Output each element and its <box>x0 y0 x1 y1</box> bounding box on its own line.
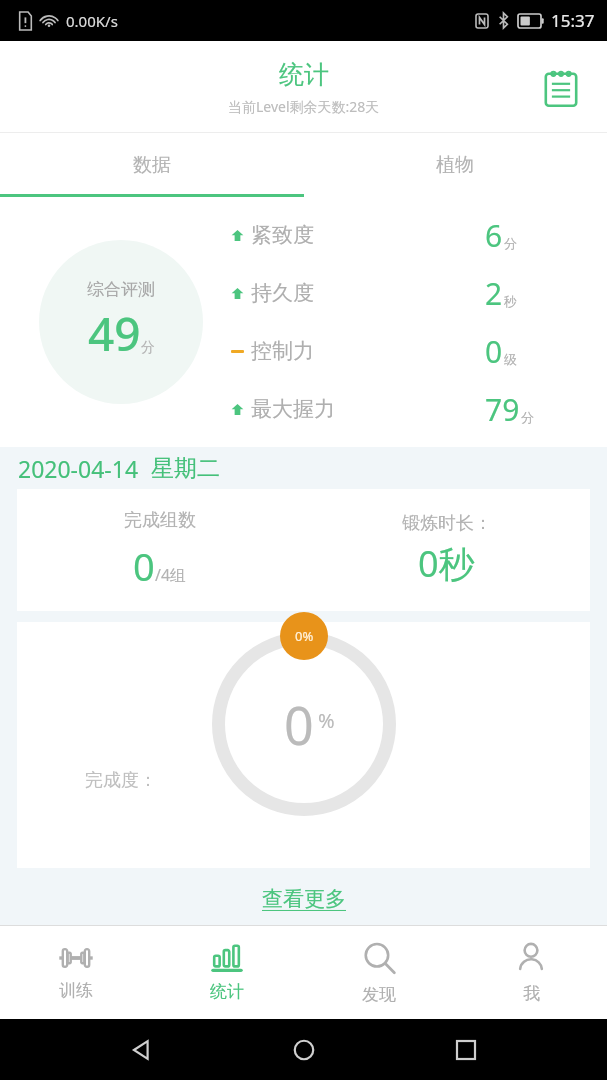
staticText: 分 <box>504 235 517 251</box>
staticText: 统计 <box>210 981 244 1002</box>
staticText: 当前Level剩余天数:28天 <box>228 97 380 116</box>
button[interactable]: 我 <box>455 926 607 1019</box>
button[interactable]: 查看更多 <box>252 882 356 916</box>
staticText: 分 <box>141 339 155 357</box>
staticText: /4组 <box>155 564 187 586</box>
staticText: 0 <box>133 540 155 592</box>
staticText: 训练 <box>59 980 93 1001</box>
staticText: 星期二 <box>151 454 220 483</box>
staticText: 数据 <box>133 153 171 177</box>
staticText: 6 <box>485 215 503 256</box>
staticText: % <box>318 707 335 734</box>
staticText: 紧致度 <box>251 222 314 248</box>
staticText: 查看更多 <box>262 886 346 912</box>
button[interactable]: 训练 <box>0 926 151 1019</box>
staticText: 统计 <box>279 59 329 90</box>
staticText: 控制力 <box>251 338 314 364</box>
staticText: 0 <box>284 689 314 760</box>
staticText: 2020-04-14 <box>18 453 139 484</box>
staticText: 0 <box>485 331 503 372</box>
staticText: 植物 <box>436 153 474 177</box>
button[interactable]: 植物 <box>303 133 607 197</box>
staticText: 分 <box>521 409 534 425</box>
staticText: 秒 <box>504 293 517 309</box>
button[interactable]: 数据 <box>0 133 303 197</box>
staticText: 我 <box>523 983 540 1004</box>
staticText: 0秒 <box>418 539 475 588</box>
staticText: 完成度： <box>85 769 157 792</box>
staticText: 发现 <box>362 984 396 1005</box>
staticText: 最大握力 <box>251 396 335 422</box>
staticText: 15:37 <box>551 9 595 32</box>
button[interactable]: 记录 <box>537 63 585 111</box>
staticText: 0.00K/s <box>66 11 118 31</box>
staticText: 49 <box>88 302 141 365</box>
staticText: 2 <box>485 273 503 314</box>
staticText: 0% <box>295 627 314 645</box>
staticText: 级 <box>504 351 517 367</box>
button[interactable]: Home <box>282 1028 326 1072</box>
staticText: 持久度 <box>251 280 314 306</box>
staticText: 综合评测 <box>87 279 155 300</box>
button[interactable]: Back <box>119 1028 163 1072</box>
staticText: 锻炼时长： <box>402 512 492 535</box>
button[interactable]: Recents <box>444 1028 488 1072</box>
staticText: 完成组数 <box>124 509 196 532</box>
button[interactable]: 统计 <box>151 926 303 1019</box>
staticText: 79 <box>485 389 520 430</box>
button[interactable]: 发现 <box>303 926 455 1019</box>
